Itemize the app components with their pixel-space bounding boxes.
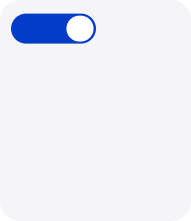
button[interactable]: Toggle, on: [11, 14, 96, 44]
